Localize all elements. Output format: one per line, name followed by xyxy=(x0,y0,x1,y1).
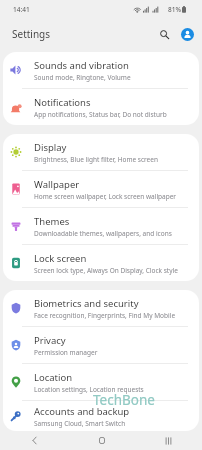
button[interactable]: Recents xyxy=(135,431,202,450)
staticText: Downloadable themes, wallpapers, and ico… xyxy=(34,229,172,238)
staticText: Settings xyxy=(12,27,51,41)
staticText: Brightness, Blue light filter, Home scre… xyxy=(34,155,158,164)
staticText: TechBone xyxy=(93,391,155,409)
staticText: Permission manager xyxy=(34,348,98,357)
staticText: App notifications, Status bar, Do not di… xyxy=(34,110,167,119)
staticText: Privacy xyxy=(34,334,66,347)
staticText: Notifications xyxy=(34,96,91,109)
button[interactable]: Home xyxy=(68,431,135,450)
staticText: Face recognition, Fingerprints, Find My … xyxy=(34,311,176,320)
button[interactable]: Display xyxy=(3,134,199,170)
staticText: Lock screen xyxy=(34,252,87,265)
staticText: Home screen wallpaper, Lock screen wallp… xyxy=(34,192,177,201)
button[interactable]: Notifications xyxy=(3,89,199,125)
button[interactable]: Accounts and backup xyxy=(3,401,199,431)
staticText: Display xyxy=(34,141,67,154)
staticText: 14:41 xyxy=(13,5,30,14)
button[interactable]: Wallpaper xyxy=(3,171,199,207)
staticText: Sounds and vibration xyxy=(34,59,129,72)
button[interactable]: Privacy xyxy=(3,327,199,363)
staticText: Wallpaper xyxy=(34,178,80,191)
staticText: Accounts and backup xyxy=(34,405,130,418)
button[interactable]: Back xyxy=(0,431,68,450)
staticText: Sound mode, Ringtone, Volume xyxy=(34,73,131,82)
button[interactable]: Themes xyxy=(3,208,199,244)
button[interactable]: Lock screen xyxy=(3,245,199,281)
staticText: Location xyxy=(34,371,73,384)
button[interactable]: Search xyxy=(155,25,173,43)
button[interactable]: Account xyxy=(178,25,196,43)
staticText: Screen lock type, Always On Display, Clo… xyxy=(34,266,178,275)
staticText: Samsung Cloud, Smart Switch xyxy=(34,419,126,428)
button[interactable]: Location xyxy=(3,364,199,400)
staticText: 81% xyxy=(168,5,181,14)
button[interactable]: Biometrics and security xyxy=(3,290,199,326)
staticText: Biometrics and security xyxy=(34,297,139,310)
staticText: Themes xyxy=(34,215,70,228)
staticText: Location settings, Location requests xyxy=(34,385,144,394)
button[interactable]: Sounds and vibration xyxy=(3,52,199,88)
